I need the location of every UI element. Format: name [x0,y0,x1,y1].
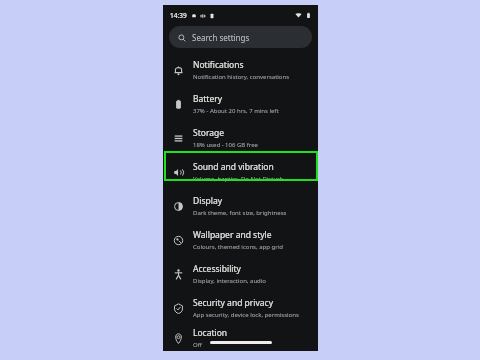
staticText: 37% - About 20 hrs, 7 mins left [193,107,279,115]
button[interactable]: Wallpaper and style [163,223,318,257]
staticText: 18% used - 106 GB free [193,141,258,149]
staticText: Volume, haptics, Do Not Disturb [193,175,284,183]
staticText: App security, device lock, permissions [193,311,299,319]
staticText: Sound and vibration [193,161,274,173]
staticText: Display, interaction, audio [193,277,266,285]
staticText: Accessibility [193,263,241,275]
staticText: Colours, themed icons, app grid [193,243,283,251]
staticText: Display [193,195,222,207]
staticText: Notification history, conversations [193,73,290,81]
button[interactable]: Accessibility [163,257,318,291]
staticText: Dark theme, font size, brightness [193,209,287,217]
staticText: Notifications [193,59,244,71]
staticText: Security and privacy [193,297,274,309]
button[interactable]: Security and privacy [163,291,318,325]
button[interactable]: Storage [163,121,318,155]
button[interactable]: Location [163,325,318,351]
staticText: 14:39 [170,11,187,20]
button[interactable]: Sound and vibration [163,155,318,189]
staticText: Location [193,327,228,339]
staticText: Off [193,341,202,349]
button[interactable]: Battery [163,87,318,121]
staticText: Storage [193,127,225,139]
button[interactable]: Notifications [163,53,318,87]
button[interactable]: Display [163,189,318,223]
staticText: Battery [193,93,223,105]
staticText: Search settings [192,32,250,43]
button[interactable]: Search settings [169,26,312,48]
staticText: Wallpaper and style [193,229,272,241]
